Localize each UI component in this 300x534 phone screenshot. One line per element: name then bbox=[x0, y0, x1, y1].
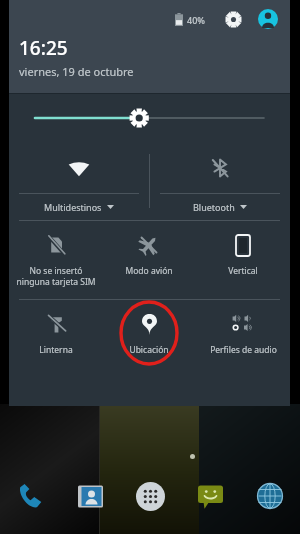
staticText: Multidestinos bbox=[44, 201, 102, 213]
staticText: 40% bbox=[187, 14, 205, 26]
button[interactable]: Linterna bbox=[9, 300, 102, 356]
staticText: Ubicación bbox=[129, 344, 169, 356]
button[interactable]: Bluetooth bbox=[150, 142, 290, 220]
button[interactable] bbox=[60, 473, 120, 519]
button[interactable]: Brightness bbox=[9, 94, 290, 142]
staticText: 16:25 bbox=[19, 35, 68, 61]
staticText: Perfiles de audio bbox=[210, 344, 277, 356]
button[interactable] bbox=[240, 473, 300, 519]
button[interactable]: Ubicación bbox=[102, 300, 196, 370]
button[interactable]: Modo avión bbox=[102, 221, 196, 277]
button[interactable]: No se insertó ninguna tarjeta SIM bbox=[9, 221, 102, 287]
button[interactable] bbox=[180, 473, 240, 519]
button[interactable]: User profile bbox=[256, 7, 280, 31]
staticText: Modo avión bbox=[125, 265, 173, 277]
button[interactable]: Settings bbox=[221, 7, 245, 31]
button[interactable] bbox=[0, 473, 60, 519]
button[interactable]: 40% bbox=[173, 13, 207, 26]
staticText: Linterna bbox=[39, 344, 73, 356]
staticText: Bluetooth bbox=[193, 201, 235, 213]
button[interactable]: Vertical bbox=[196, 221, 290, 277]
staticText: viernes, 19 de octubre bbox=[19, 64, 134, 79]
staticText: Vertical bbox=[228, 265, 258, 277]
button[interactable] bbox=[120, 473, 180, 519]
button[interactable]: Perfiles de audio bbox=[196, 300, 290, 356]
staticText: No se insertó ninguna tarjeta SIM bbox=[16, 265, 96, 287]
button[interactable]: Multidestinos bbox=[9, 142, 149, 220]
